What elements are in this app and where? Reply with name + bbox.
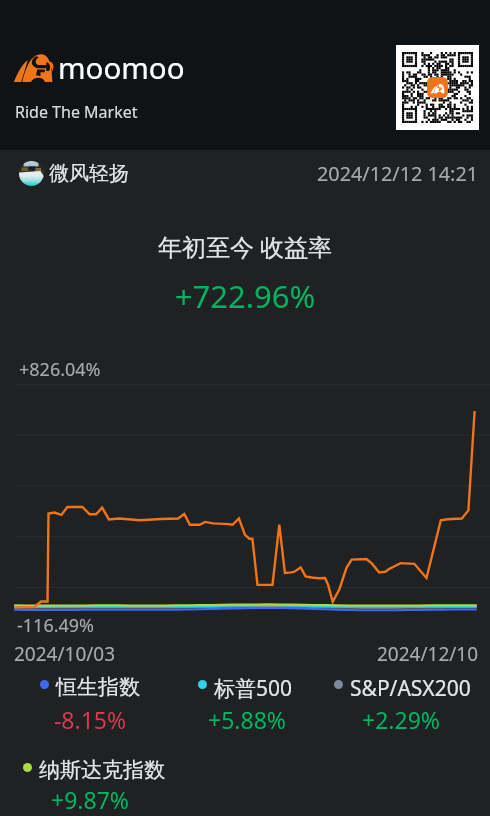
staticText: 年初至今 收益率 xyxy=(0,230,490,263)
button[interactable]: 恒生指数 xyxy=(56,674,140,700)
staticText: -8.15% xyxy=(30,704,150,735)
staticText: +722.96% xyxy=(0,275,490,317)
staticText: 2024/12/10 xyxy=(377,641,479,667)
button[interactable]: 纳斯达克指数 xyxy=(39,757,165,783)
staticText: moomoo xyxy=(58,47,185,87)
button[interactable]: 标普500 xyxy=(214,674,293,703)
staticText: +5.88% xyxy=(187,704,307,735)
button[interactable]: Scan QR code xyxy=(396,45,479,130)
staticText: Ride The Market xyxy=(15,101,138,123)
staticText: 2024/10/03 xyxy=(14,641,116,667)
button[interactable]: Year-to-date performance chart xyxy=(0,340,490,636)
staticText: -116.49% xyxy=(17,613,95,638)
staticText: 纳斯达克指数 xyxy=(39,757,165,783)
staticText: +9.87% xyxy=(30,784,150,815)
staticText: 恒生指数 xyxy=(56,674,140,700)
button[interactable]: 微风轻扬 xyxy=(0,160,490,186)
staticText: S&P/ASX200 xyxy=(350,674,471,703)
staticText: 2024/12/12 14:21 xyxy=(317,160,479,186)
button[interactable]: moomoo xyxy=(12,47,185,87)
button[interactable]: S&P/ASX200 xyxy=(350,674,471,703)
staticText: +2.29% xyxy=(341,704,461,735)
staticText: 微风轻扬 xyxy=(49,161,129,186)
staticText: +826.04% xyxy=(19,357,101,382)
staticText: 标普500 xyxy=(214,674,293,703)
